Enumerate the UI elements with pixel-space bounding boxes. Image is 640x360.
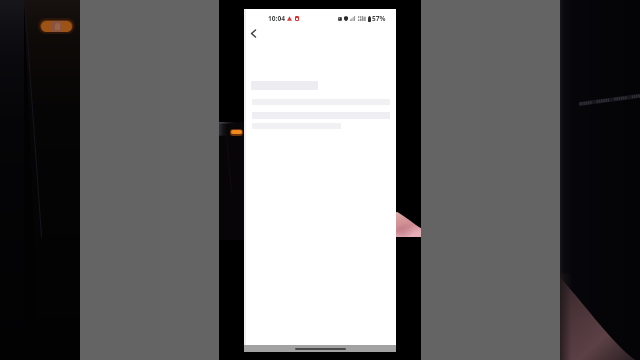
staticText: 10:04 — [268, 14, 285, 23]
staticText: 57% — [372, 14, 386, 23]
button[interactable]: Back — [245, 25, 262, 42]
